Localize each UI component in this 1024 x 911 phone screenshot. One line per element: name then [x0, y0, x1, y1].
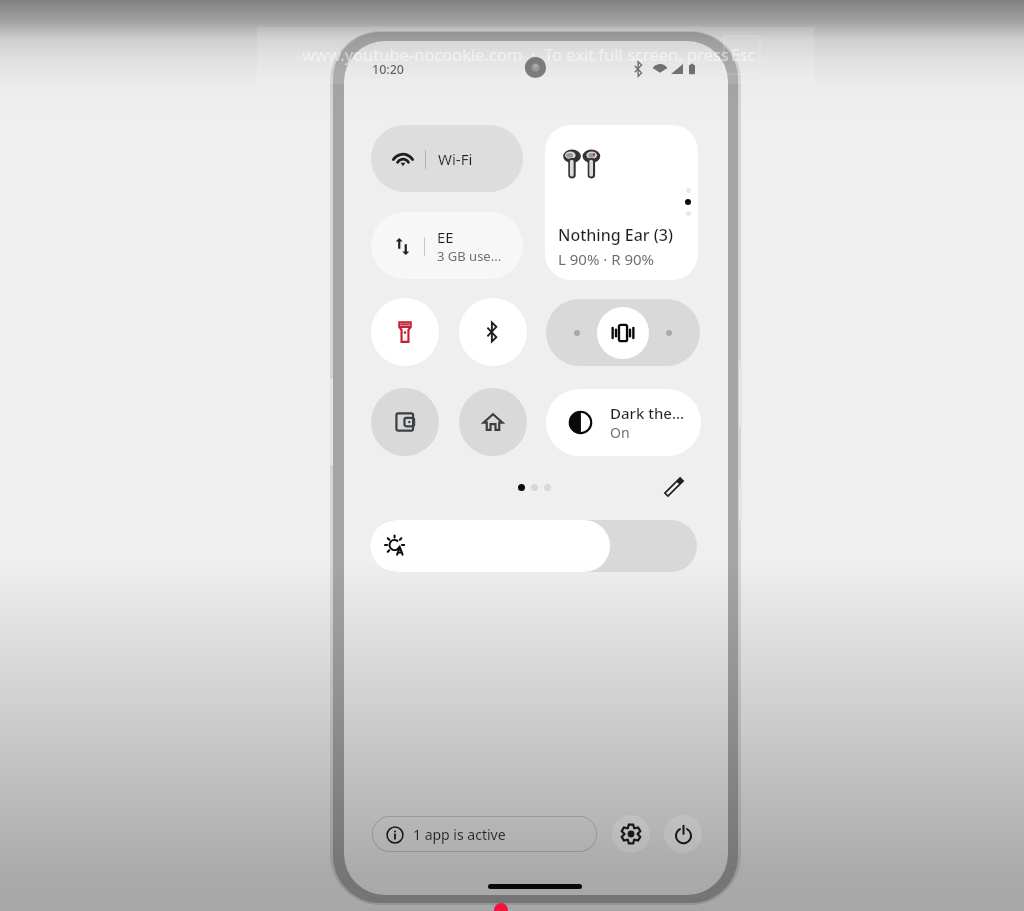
- staticText: 10:20: [372, 61, 405, 78]
- staticText: Wi-Fi: [438, 149, 473, 169]
- button[interactable]: Wi-Fi: [371, 125, 523, 192]
- button[interactable]: Wallet: [371, 388, 439, 456]
- staticText: 3 GB use...: [437, 247, 502, 265]
- staticText: Dark the...: [610, 403, 685, 423]
- staticText: On: [610, 423, 630, 442]
- button[interactable]: Nothing Ear (3): [545, 125, 698, 280]
- button[interactable]: Brightness: [370, 520, 697, 572]
- button[interactable]: Power: [664, 815, 702, 853]
- button[interactable]: EE: [371, 212, 523, 279]
- button[interactable]: 1 app is active: [372, 816, 597, 852]
- button[interactable]: Edit tiles: [656, 469, 692, 505]
- staticText: 1 app is active: [413, 825, 506, 844]
- staticText: www.youtube-nocookie.com · To exit full …: [302, 43, 729, 65]
- button[interactable]: Bluetooth: [459, 298, 527, 366]
- button[interactable]: Settings: [612, 815, 650, 853]
- button[interactable]: Flashlight: [371, 298, 439, 366]
- button[interactable]: Ring mode: [546, 299, 700, 366]
- button[interactable]: Home: [459, 388, 527, 456]
- staticText: EE: [437, 227, 454, 247]
- staticText: Esc: [731, 44, 756, 66]
- button[interactable]: Dark the...: [546, 389, 701, 456]
- staticText: Nothing Ear (3): [558, 224, 673, 246]
- staticText: L 90% · R 90%: [558, 249, 655, 269]
